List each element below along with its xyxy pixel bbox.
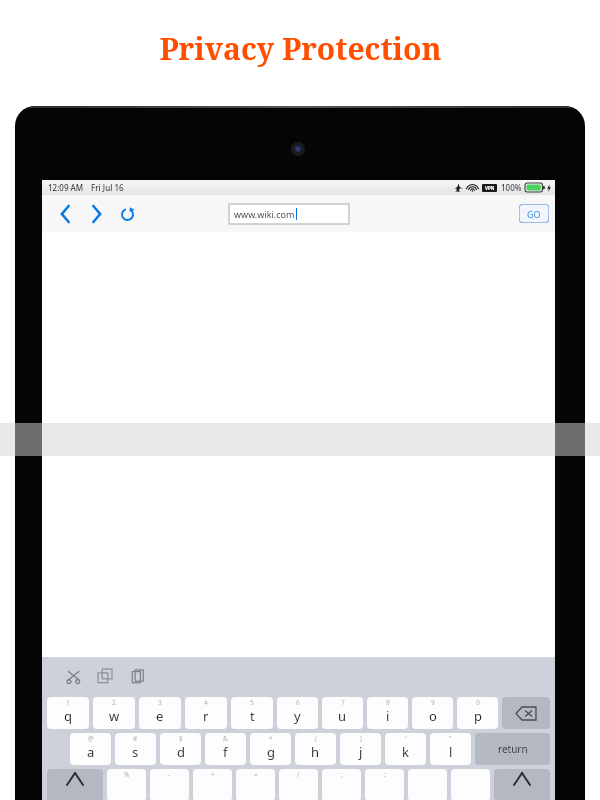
staticText: Fri Jul 16: [91, 182, 124, 193]
button[interactable]: Shift: [47, 769, 103, 800]
staticText: l: [449, 743, 453, 761]
button[interactable]: #: [115, 733, 156, 765]
button[interactable]: www.wiki.com: [229, 204, 349, 224]
staticText: =: [254, 770, 258, 779]
button[interactable]: (: [295, 733, 336, 765]
button[interactable]: *: [250, 733, 291, 765]
staticText: k: [402, 743, 409, 761]
button[interactable]: 5: [231, 697, 273, 729]
button[interactable]: %: [107, 769, 146, 800]
button[interactable]: :: [365, 769, 404, 800]
staticText: a: [87, 743, 95, 761]
button[interactable]: 6: [277, 697, 318, 729]
staticText: ': [405, 734, 407, 743]
staticText: 2: [112, 698, 116, 707]
staticText: ): [360, 734, 362, 743]
button[interactable]: Paste: [124, 663, 150, 689]
staticText: j: [359, 743, 363, 761]
staticText: Privacy Protection: [159, 28, 442, 69]
staticText: *: [269, 734, 273, 743]
staticText: 5: [250, 698, 254, 707]
staticText: 9: [431, 698, 435, 707]
button[interactable]: ': [385, 733, 426, 765]
button[interactable]: GO: [519, 204, 549, 223]
button[interactable]: [451, 769, 490, 800]
button[interactable]: 0: [457, 697, 498, 729]
button[interactable]: ": [430, 733, 471, 765]
staticText: r: [203, 707, 209, 725]
staticText: 0: [476, 698, 480, 707]
button[interactable]: 2: [93, 697, 135, 729]
staticText: -: [168, 770, 171, 779]
button[interactable]: Cut: [60, 663, 86, 689]
staticText: f: [223, 743, 228, 761]
button[interactable]: -: [150, 769, 189, 800]
staticText: 4: [204, 698, 208, 707]
button[interactable]: @: [70, 733, 111, 765]
button[interactable]: return: [475, 733, 550, 765]
staticText: ": [449, 734, 452, 743]
button[interactable]: Copy: [92, 663, 118, 689]
staticText: 3: [158, 698, 162, 707]
button[interactable]: =: [236, 769, 275, 800]
staticText: u: [338, 707, 347, 725]
button[interactable]: ): [340, 733, 381, 765]
staticText: d: [177, 743, 185, 761]
button[interactable]: Backspace: [502, 697, 550, 729]
staticText: @: [88, 734, 94, 743]
button[interactable]: &: [205, 733, 246, 765]
staticText: 8: [386, 698, 390, 707]
staticText: ;: [341, 770, 343, 779]
button[interactable]: /: [279, 769, 318, 800]
staticText: :: [384, 770, 386, 779]
staticText: GO: [527, 208, 541, 220]
staticText: $: [179, 734, 183, 743]
staticText: %: [124, 770, 130, 779]
staticText: 7: [341, 698, 345, 707]
staticText: q: [64, 707, 72, 725]
button[interactable]: 1: [47, 697, 89, 729]
button[interactable]: Back: [52, 201, 78, 227]
staticText: +: [211, 770, 215, 779]
staticText: g: [267, 743, 275, 761]
button[interactable]: Shift: [494, 769, 550, 800]
staticText: 1: [66, 698, 70, 707]
staticText: w: [109, 707, 120, 725]
button[interactable]: ;: [322, 769, 361, 800]
button[interactable]: 8: [367, 697, 408, 729]
staticText: s: [132, 743, 139, 761]
button[interactable]: 7: [322, 697, 363, 729]
button[interactable]: 4: [185, 697, 227, 729]
staticText: y: [294, 707, 301, 725]
button[interactable]: 9: [412, 697, 453, 729]
button[interactable]: $: [160, 733, 201, 765]
staticText: #: [133, 734, 138, 743]
staticText: &: [223, 734, 228, 743]
button[interactable]: 3: [139, 697, 181, 729]
staticText: (: [315, 734, 317, 743]
staticText: e: [156, 707, 164, 725]
button[interactable]: +: [193, 769, 232, 800]
staticText: o: [429, 707, 437, 725]
staticText: p: [474, 707, 482, 725]
staticText: return: [498, 742, 528, 756]
staticText: 12:09 AM: [48, 182, 84, 193]
button[interactable]: Reload: [114, 201, 140, 227]
staticText: /: [297, 770, 300, 779]
button[interactable]: Forward: [83, 201, 109, 227]
staticText: i: [386, 707, 390, 725]
staticText: 6: [296, 698, 300, 707]
staticText: 100%: [501, 182, 522, 193]
staticText: t: [250, 707, 255, 725]
staticText: h: [311, 743, 320, 761]
staticText: www.wiki.com: [234, 208, 295, 220]
button[interactable]: [408, 769, 447, 800]
staticText: VPN: [485, 185, 495, 191]
